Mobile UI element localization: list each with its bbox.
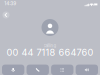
staticText: 00 44 7118 664760 bbox=[6, 47, 93, 58]
staticText: 14:39 bbox=[4, 1, 16, 6]
staticText: calling bbox=[43, 43, 56, 48]
button[interactable]: Keypad bbox=[51, 65, 73, 75]
button[interactable]: Back bbox=[2, 11, 9, 18]
button[interactable]: End call bbox=[27, 65, 49, 75]
button[interactable]: Mute bbox=[2, 65, 24, 75]
button[interactable]: Speaker bbox=[76, 65, 98, 75]
